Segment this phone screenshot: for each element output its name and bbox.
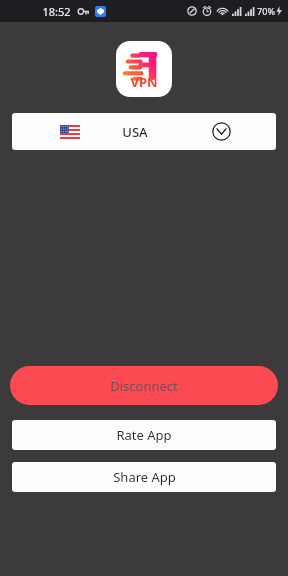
- staticText: Share App: [113, 468, 176, 486]
- staticText: USA: [122, 123, 148, 141]
- other: VPN app logo: [116, 41, 172, 97]
- button[interactable]: Disconnect: [10, 366, 278, 405]
- staticText: Rate App: [116, 426, 172, 444]
- staticText: Disconnect: [110, 377, 178, 395]
- button[interactable]: Rate App: [12, 420, 276, 450]
- button[interactable]: USA: [12, 113, 276, 150]
- staticText: VPN: [130, 73, 158, 91]
- staticText: 18:52: [42, 4, 71, 19]
- staticText: 70%: [257, 5, 275, 17]
- button[interactable]: Share App: [12, 462, 276, 492]
- button[interactable]: Expand country list: [212, 122, 231, 141]
